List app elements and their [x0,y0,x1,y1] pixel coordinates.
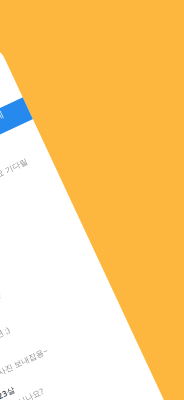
button[interactable]: 서울 23살 [0,313,184,348]
button[interactable]: 내 주변 인기 이성 지금 무료로 확인해보세요 이 [0,63,184,87]
staticText: 나 남이 사진 보내잡용~ [43,297,126,308]
staticText: 사진 한장만 [43,157,85,167]
staticText: 혹시 지금 남있어? [43,227,106,238]
button[interactable]: 부산 24살 [0,103,184,138]
button[interactable]: 제주 25살 [0,243,184,278]
staticText: 내 주변 인기 이성 지금 무료로 확인해보세요 이 [14,63,184,86]
button[interactable]: 광주 27살 [0,208,184,243]
button[interactable]: 서울 22살 [0,278,184,313]
staticText: 대전 26살 [43,179,79,189]
staticText: 광주 27살 [43,213,79,224]
button[interactable]: 수원 24살 [0,348,184,383]
staticText: 인천 21살 [43,144,79,154]
button[interactable]: 인천 21살 [0,138,184,173]
button[interactable]: 대전 26살 [0,173,184,208]
staticText: 안녕하세요 [43,192,83,202]
